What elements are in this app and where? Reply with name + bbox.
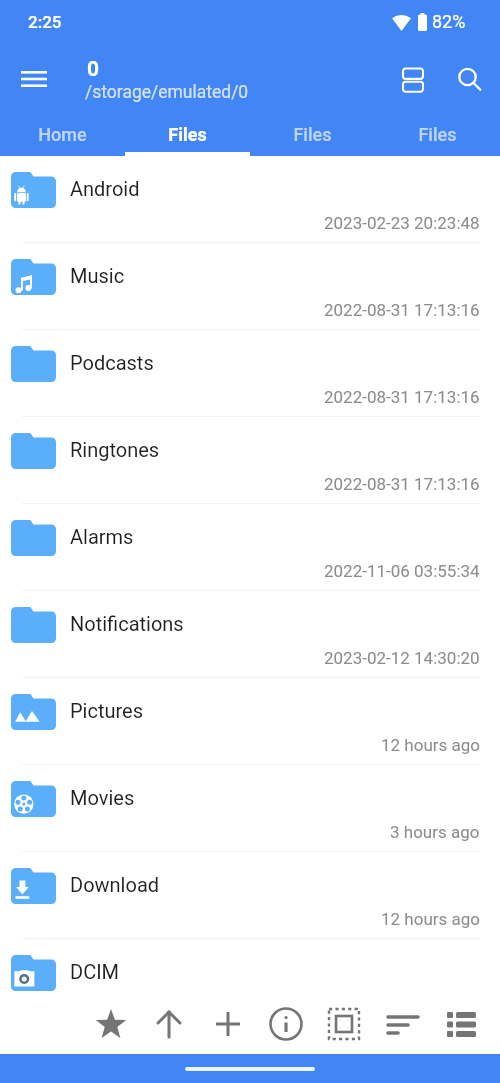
- staticText: Music: [70, 264, 125, 287]
- staticText: Home: [38, 124, 87, 145]
- button[interactable]: Favorites: [87, 1000, 135, 1048]
- staticText: Download: [70, 873, 160, 896]
- staticText: Alarms: [70, 525, 134, 548]
- staticText: /storage/emulated/0: [85, 82, 249, 103]
- button[interactable]: Download: [0, 852, 500, 939]
- button[interactable]: Notifications: [0, 591, 500, 678]
- staticText: 12 hours ago: [381, 909, 480, 929]
- button[interactable]: Select all: [320, 1000, 368, 1048]
- button[interactable]: Alarms: [0, 504, 500, 591]
- button[interactable]: Search: [446, 56, 494, 104]
- button[interactable]: Open navigation menu: [10, 55, 58, 103]
- staticText: 12 hours ago: [381, 735, 480, 755]
- staticText: DCIM: [70, 960, 120, 983]
- staticText: Notifications: [70, 612, 184, 635]
- staticText: 0: [87, 57, 100, 82]
- staticText: Files: [293, 124, 332, 145]
- button[interactable]: Info: [262, 1000, 310, 1048]
- button[interactable]: Movies: [0, 765, 500, 852]
- staticText: Pictures: [70, 699, 144, 722]
- button[interactable]: Ringtones: [0, 417, 500, 504]
- staticText: 2:25: [28, 12, 62, 32]
- staticText: Files: [168, 124, 207, 145]
- staticText: 2023-02-23 20:23:48: [324, 213, 480, 233]
- button[interactable]: Split screen: [389, 56, 437, 104]
- staticText: Files: [418, 124, 457, 145]
- button[interactable]: Files: [125, 118, 250, 156]
- button[interactable]: Go up: [145, 1000, 193, 1048]
- staticText: 2022-08-31 17:13:16: [324, 387, 480, 407]
- button[interactable]: View mode: [436, 1000, 484, 1048]
- staticText: 82%: [432, 11, 466, 32]
- staticText: 2022-11-06 03:55:34: [324, 561, 480, 581]
- staticText: Android: [70, 177, 140, 200]
- staticText: 2023-02-12 14:30:20: [324, 648, 480, 668]
- staticText: 2022-08-31 17:13:16: [324, 474, 480, 494]
- button[interactable]: Home: [0, 118, 125, 156]
- staticText: 3 hours ago: [390, 822, 480, 842]
- button[interactable]: Sort: [379, 1000, 427, 1048]
- staticText: Podcasts: [70, 351, 154, 374]
- button[interactable]: Podcasts: [0, 330, 500, 417]
- button[interactable]: DCIM: [0, 939, 500, 993]
- button[interactable]: Music: [0, 243, 500, 330]
- staticText: Movies: [70, 786, 135, 809]
- button[interactable]: Pictures: [0, 678, 500, 765]
- button[interactable]: Files: [250, 118, 375, 156]
- button[interactable]: Add: [204, 1000, 252, 1048]
- button[interactable]: Android: [0, 156, 500, 243]
- staticText: 2022-08-31 17:13:16: [324, 300, 480, 320]
- staticText: Ringtones: [70, 438, 160, 461]
- button[interactable]: Files: [375, 118, 500, 156]
